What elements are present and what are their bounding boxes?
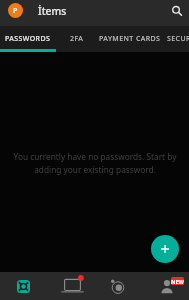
button[interactable]: Account, new (142, 272, 189, 300)
button[interactable]: Search (165, 0, 189, 21)
staticText: NEW (171, 278, 184, 285)
staticText: 2FA (70, 34, 84, 44)
staticText: SECURE NOTES (167, 34, 189, 44)
staticText: P (13, 6, 18, 16)
button[interactable]: SECURE NOTES (166, 26, 189, 52)
button[interactable]: Account (8, 3, 23, 18)
button[interactable]: Monitoring (95, 272, 142, 300)
button[interactable]: 2FA (61, 26, 92, 52)
staticText: PAYMENT CARDS (99, 34, 161, 44)
staticText: You currently have no passwords. Start b… (11, 151, 179, 175)
button[interactable]: PAYMENT CARDS (92, 26, 166, 52)
staticText: PASSWORDS (5, 34, 51, 44)
button[interactable]: Devices (48, 272, 95, 300)
staticText: İtems (38, 4, 67, 18)
button[interactable]: PASSWORDS (0, 26, 61, 52)
button[interactable]: Vault (0, 272, 48, 300)
button[interactable]: Add password (151, 235, 179, 263)
